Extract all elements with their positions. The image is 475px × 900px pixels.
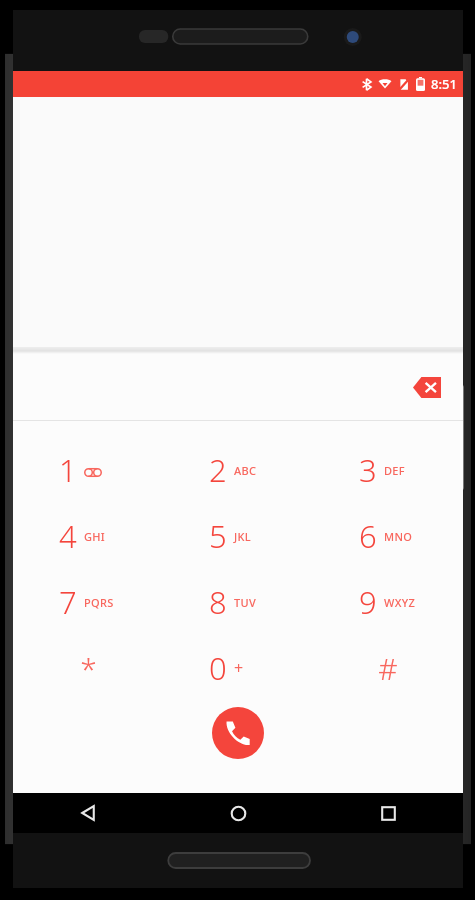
- staticText: MNO: [384, 529, 413, 544]
- staticText: 9: [359, 581, 377, 623]
- button[interactable]: 9: [313, 569, 463, 635]
- button[interactable]: *: [13, 635, 163, 701]
- staticText: 8:51: [431, 75, 457, 93]
- staticText: DEF: [384, 463, 405, 478]
- button[interactable]: 0: [163, 635, 313, 701]
- button[interactable]: 7: [13, 569, 163, 635]
- button[interactable]: Recent apps: [313, 793, 463, 833]
- staticText: 1: [59, 449, 77, 491]
- staticText: GHI: [84, 529, 106, 544]
- staticText: 0: [209, 647, 227, 689]
- staticText: WXYZ: [384, 595, 416, 610]
- staticText: #: [378, 648, 398, 689]
- staticText: 3: [359, 449, 377, 491]
- button[interactable]: 5: [163, 503, 313, 569]
- button[interactable]: 8: [163, 569, 313, 635]
- button[interactable]: 3: [313, 437, 463, 503]
- button[interactable]: Home: [163, 793, 313, 833]
- button[interactable]: 4: [13, 503, 163, 569]
- staticText: PQRS: [84, 595, 114, 610]
- button[interactable]: Back: [13, 793, 163, 833]
- staticText: 8: [209, 581, 227, 623]
- button[interactable]: Backspace: [405, 365, 449, 409]
- staticText: 7: [59, 581, 77, 623]
- staticText: 6: [359, 515, 377, 557]
- staticText: *: [80, 648, 97, 689]
- button[interactable]: 1: [13, 437, 163, 503]
- button[interactable]: Call: [212, 707, 264, 759]
- staticText: JKL: [234, 529, 251, 544]
- staticText: ABC: [234, 463, 257, 478]
- staticText: TUV: [234, 595, 256, 610]
- button[interactable]: 2: [163, 437, 313, 503]
- staticText: +: [234, 657, 244, 679]
- button[interactable]: 6: [313, 503, 463, 569]
- staticText: 2: [209, 449, 227, 491]
- staticText: 5: [209, 515, 227, 557]
- staticText: 4: [59, 515, 77, 557]
- button[interactable]: #: [313, 635, 463, 701]
